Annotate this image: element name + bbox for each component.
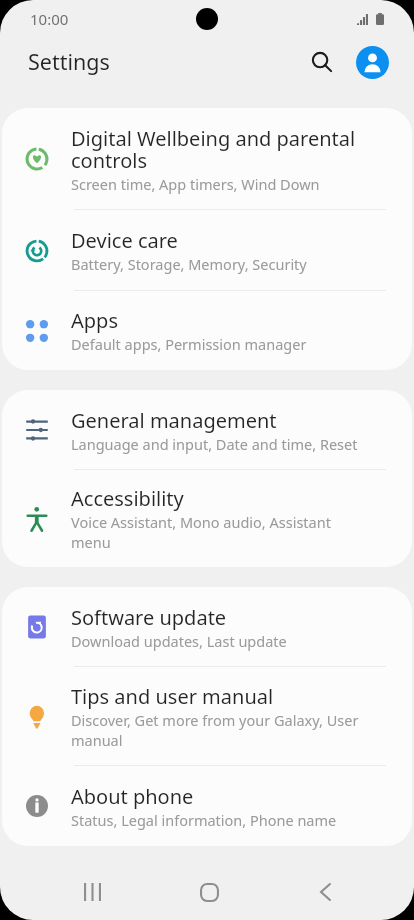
staticText: Discover, Get more from your Galaxy, Use… — [71, 710, 364, 751]
staticText: Tips and user manual — [71, 683, 274, 710]
button[interactable]: Home — [180, 864, 239, 920]
staticText: Voice Assistant, Mono audio, Assistant m… — [71, 512, 364, 553]
staticText: Accessibility — [71, 485, 184, 512]
staticText: Digital Wellbeing and parental controls — [71, 125, 364, 174]
staticText: About phone — [71, 783, 194, 810]
button[interactable]: Accessibility — [2, 470, 412, 567]
button[interactable]: General management — [2, 390, 412, 470]
staticText: Settings — [28, 47, 110, 76]
staticText: Apps — [71, 307, 118, 334]
button[interactable]: Back — [296, 864, 355, 920]
button[interactable]: Device care — [2, 210, 412, 291]
button[interactable]: Search — [299, 39, 345, 85]
staticText: Download updates, Last update — [71, 631, 287, 651]
staticText: 10:00 — [30, 9, 69, 29]
staticText: Software update — [71, 604, 227, 631]
button[interactable]: About phone — [2, 766, 412, 846]
button[interactable]: Digital Wellbeing and parental controls — [2, 108, 412, 210]
staticText: Status, Legal information, Phone name — [71, 810, 337, 830]
button[interactable]: Software update — [2, 587, 412, 667]
button[interactable]: Recents — [63, 864, 122, 920]
button[interactable]: Apps — [2, 291, 412, 370]
staticText: Screen time, App timers, Wind Down — [71, 174, 320, 194]
staticText: Battery, Storage, Memory, Security — [71, 254, 307, 274]
staticText: General management — [71, 407, 277, 434]
button[interactable]: Tips and user manual — [2, 667, 412, 766]
staticText: Default apps, Permission manager — [71, 334, 307, 354]
button[interactable]: Account — [349, 39, 395, 85]
staticText: Device care — [71, 227, 178, 254]
staticText: Language and input, Date and time, Reset — [71, 434, 358, 454]
